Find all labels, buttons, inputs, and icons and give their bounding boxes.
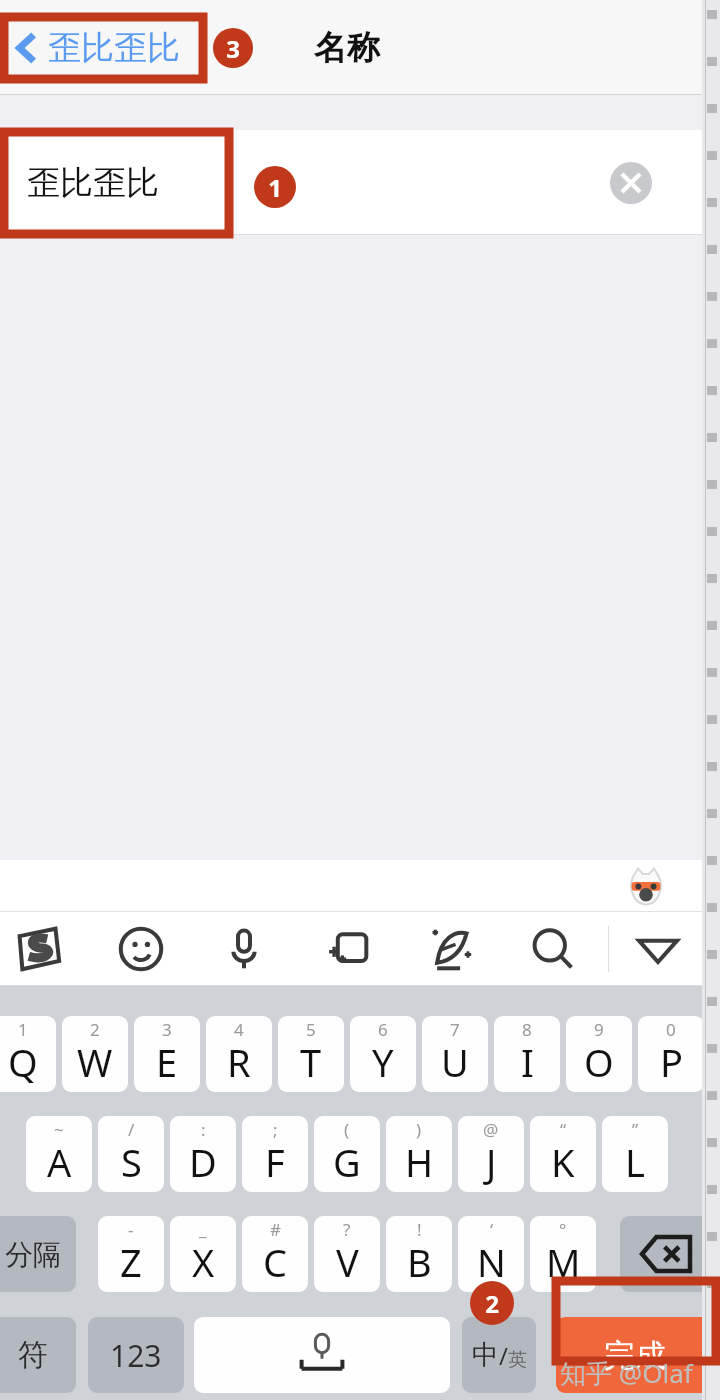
button[interactable]: 完成: [556, 1317, 714, 1393]
button[interactable]: Hide keyboard: [628, 919, 688, 979]
staticText: O: [584, 1036, 614, 1088]
staticText: 123: [110, 1335, 162, 1376]
staticText: M: [546, 1236, 581, 1288]
button[interactable]: (: [314, 1116, 380, 1192]
staticText: ): [416, 1118, 422, 1141]
button[interactable]: #: [242, 1216, 308, 1292]
staticText: 5: [306, 1018, 316, 1041]
staticText: E: [156, 1036, 178, 1088]
button[interactable]: !: [386, 1216, 452, 1292]
button[interactable]: 分隔: [0, 1216, 76, 1292]
button[interactable]: Emoji: [111, 919, 171, 979]
staticText: S: [121, 1136, 142, 1188]
staticText: @: [483, 1118, 499, 1141]
staticText: V: [336, 1236, 359, 1288]
staticText: R: [227, 1036, 251, 1088]
staticText: Z: [120, 1236, 142, 1288]
button[interactable]: :: [170, 1116, 236, 1192]
button[interactable]: 3: [134, 1016, 200, 1092]
button[interactable]: 5: [278, 1016, 344, 1092]
button[interactable]: Sogou: [8, 919, 68, 979]
button[interactable]: 歪比歪比: [8, 19, 188, 77]
staticText: 3: [162, 1018, 172, 1041]
button[interactable]: 7: [422, 1016, 488, 1092]
staticText: 3: [226, 32, 240, 65]
button[interactable]: ;: [242, 1116, 308, 1192]
staticText: C: [263, 1236, 288, 1288]
staticText: Y: [372, 1036, 394, 1088]
staticText: 8: [522, 1018, 532, 1041]
button[interactable]: 2: [62, 1016, 128, 1092]
staticText: I: [521, 1036, 534, 1088]
staticText: 分隔: [5, 1237, 61, 1272]
staticText: T: [300, 1036, 322, 1088]
staticText: 1: [268, 171, 282, 204]
button[interactable]: 0: [638, 1016, 704, 1092]
button[interactable]: ~: [26, 1116, 92, 1192]
staticText: 中: [472, 1338, 499, 1372]
button[interactable]: 8: [494, 1016, 560, 1092]
button[interactable]: Handwriting: [420, 919, 480, 979]
button[interactable]: _: [170, 1216, 236, 1292]
button[interactable]: Input method logo: [626, 866, 666, 906]
button[interactable]: 123: [88, 1317, 184, 1393]
staticText: /: [499, 1339, 508, 1372]
staticText: ;: [273, 1118, 278, 1141]
staticText: 名称: [314, 27, 380, 69]
staticText: 2: [90, 1018, 100, 1041]
staticText: ‘: [490, 1218, 493, 1241]
staticText: 符: [18, 1336, 48, 1374]
button[interactable]: @: [458, 1116, 524, 1192]
staticText: D: [189, 1136, 217, 1188]
button[interactable]: 符: [0, 1317, 76, 1393]
button[interactable]: Clear text: [610, 162, 652, 204]
staticText: X: [192, 1236, 215, 1288]
button[interactable]: ‘: [458, 1216, 524, 1292]
staticText: F: [265, 1136, 285, 1188]
button[interactable]: °: [530, 1216, 596, 1292]
button[interactable]: 歪比歪比: [0, 130, 702, 235]
staticText: H: [405, 1136, 434, 1188]
button[interactable]: 9: [566, 1016, 632, 1092]
staticText: (: [344, 1118, 350, 1141]
button[interactable]: Switch Chinese English: [462, 1317, 536, 1393]
staticText: W: [77, 1036, 113, 1088]
staticText: L: [625, 1136, 645, 1188]
button[interactable]: “: [530, 1116, 596, 1192]
button[interactable]: 6: [350, 1016, 416, 1092]
staticText: U: [441, 1036, 469, 1088]
staticText: ”: [632, 1118, 639, 1141]
button[interactable]: 1: [0, 1016, 56, 1092]
button[interactable]: Sticker: [317, 919, 377, 979]
button[interactable]: ”: [602, 1116, 668, 1192]
staticText: _: [199, 1218, 207, 1241]
staticText: 6: [378, 1018, 388, 1041]
staticText: K: [551, 1136, 575, 1188]
button[interactable]: Space: [194, 1317, 450, 1393]
staticText: 2: [485, 1287, 499, 1320]
staticText: ~: [54, 1118, 64, 1141]
button[interactable]: Search: [523, 919, 583, 979]
staticText: P: [660, 1036, 683, 1088]
staticText: #: [270, 1218, 281, 1241]
staticText: 0: [666, 1018, 676, 1041]
staticText: -: [128, 1218, 134, 1241]
staticText: :: [201, 1118, 206, 1141]
button[interactable]: ): [386, 1116, 452, 1192]
button[interactable]: Backspace: [620, 1216, 712, 1292]
button[interactable]: /: [98, 1116, 164, 1192]
button[interactable]: Voice input: [214, 919, 274, 979]
button[interactable]: 4: [206, 1016, 272, 1092]
staticText: G: [333, 1136, 361, 1188]
button[interactable]: -: [98, 1216, 164, 1292]
button[interactable]: ?: [314, 1216, 380, 1292]
staticText: °: [559, 1218, 567, 1241]
staticText: 1: [18, 1018, 28, 1041]
staticText: “: [560, 1118, 567, 1141]
staticText: 英: [508, 1348, 527, 1372]
staticText: ?: [343, 1218, 351, 1241]
staticText: 知乎 @Olaf: [560, 1355, 693, 1391]
staticText: J: [486, 1136, 497, 1188]
staticText: /: [128, 1118, 135, 1141]
staticText: N: [477, 1236, 506, 1288]
